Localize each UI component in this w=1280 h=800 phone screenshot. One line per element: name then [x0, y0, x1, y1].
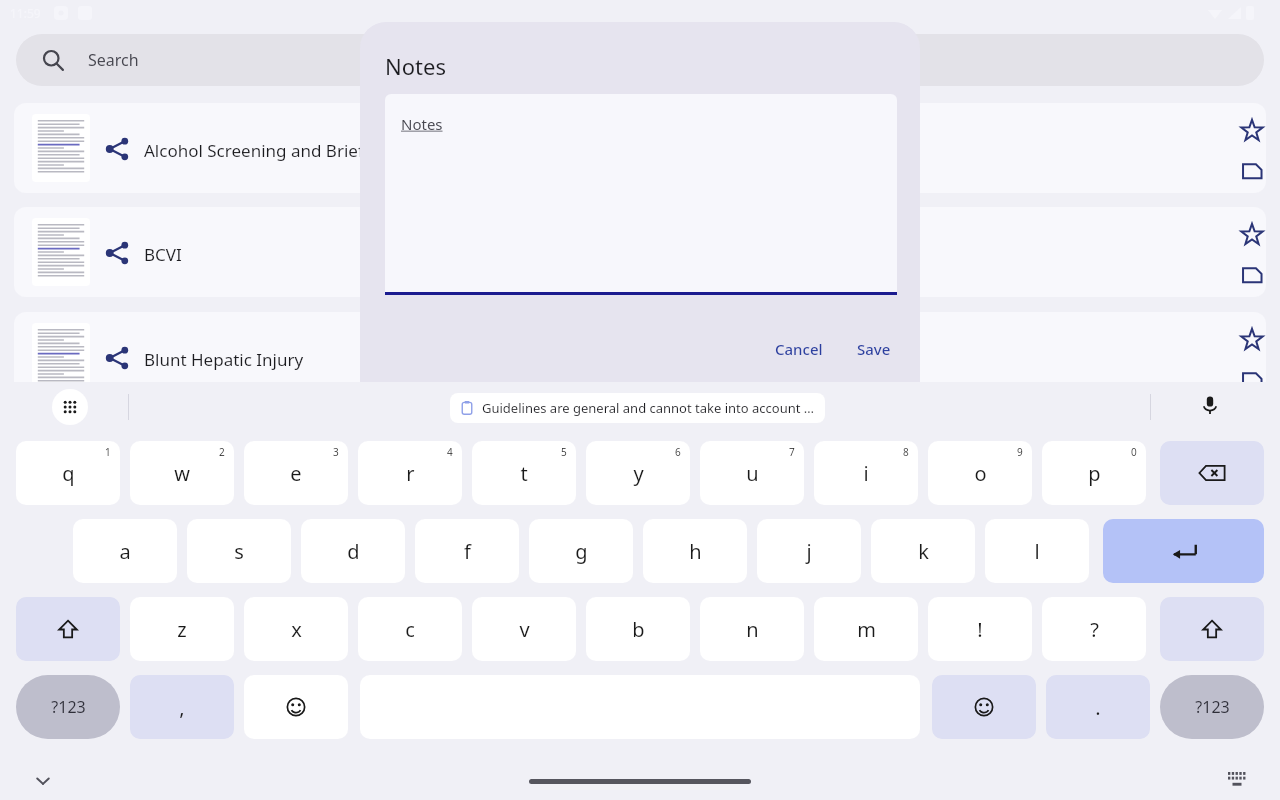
button[interactable]: Notes [385, 94, 897, 294]
button[interactable]: Backspace [1160, 441, 1264, 505]
staticText: x [291, 616, 302, 643]
button[interactable]: b [586, 597, 690, 661]
button[interactable]: More options [52, 389, 88, 425]
button[interactable]: x [244, 597, 348, 661]
staticText: 7 [789, 445, 795, 459]
staticText: ?123 [51, 696, 86, 718]
button[interactable]: i [814, 441, 918, 505]
button[interactable]: Hide keyboard [28, 766, 58, 796]
button[interactable]: Shift [1160, 597, 1264, 661]
button[interactable]: Emoji [932, 675, 1036, 739]
button[interactable]: c [358, 597, 462, 661]
button[interactable]: d [301, 519, 405, 583]
staticText: z [177, 616, 187, 643]
button[interactable]: Guidelines are general and cannot take i… [450, 393, 825, 423]
button[interactable]: m [814, 597, 918, 661]
staticText: k [918, 538, 929, 565]
button[interactable]: ?123 [1160, 675, 1264, 739]
button[interactable]: . [1046, 675, 1150, 739]
button[interactable]: Share [14, 312, 1266, 402]
button[interactable]: u [700, 441, 804, 505]
button[interactable]: Notes [1238, 366, 1266, 394]
button[interactable]: Share [104, 240, 130, 266]
staticText: 6 [675, 445, 681, 459]
staticText: m [857, 616, 876, 643]
button[interactable]: l [985, 519, 1089, 583]
button[interactable]: Favourite [1238, 221, 1266, 249]
staticText: a [119, 538, 131, 565]
staticText: Save [857, 339, 891, 359]
staticText: 2 [219, 445, 225, 459]
staticText: h [689, 538, 702, 565]
button[interactable]: k [871, 519, 975, 583]
button[interactable]: Share [14, 103, 1266, 193]
button[interactable]: p [1042, 441, 1146, 505]
staticText: f [464, 538, 471, 565]
button[interactable]: Favourite [1238, 326, 1266, 354]
button[interactable]: j [757, 519, 861, 583]
staticText: g [575, 538, 588, 565]
button[interactable]: Share [14, 207, 1266, 297]
button[interactable]: s [187, 519, 291, 583]
button[interactable]: t [472, 441, 576, 505]
staticText: s [234, 538, 244, 565]
button[interactable]: w [130, 441, 234, 505]
staticText: Blunt Hepatic Injury [144, 348, 1144, 371]
button[interactable]: r [358, 441, 462, 505]
button[interactable]: Enter [1103, 519, 1264, 583]
button[interactable]: h [643, 519, 747, 583]
button[interactable]: z [130, 597, 234, 661]
staticText: l [1034, 538, 1040, 565]
staticText: 8 [903, 445, 909, 459]
staticText: v [519, 616, 530, 643]
button[interactable]: Save [845, 329, 903, 369]
button[interactable]: Shift [16, 597, 120, 661]
staticText: 9 [1017, 445, 1023, 459]
button[interactable]: Switch keyboard [1222, 766, 1252, 796]
button[interactable]: y [586, 441, 690, 505]
staticText: n [746, 616, 759, 643]
button[interactable]: Search [16, 34, 1264, 86]
staticText: b [632, 616, 645, 643]
staticText: 3 [333, 445, 339, 459]
button[interactable]: v [472, 597, 576, 661]
button[interactable]: o [928, 441, 1032, 505]
button[interactable]: Share [104, 345, 130, 371]
button[interactable]: g [529, 519, 633, 583]
button[interactable]: a [73, 519, 177, 583]
staticText: BCVI [144, 243, 1144, 266]
button[interactable]: Favourite [1238, 117, 1266, 145]
button[interactable]: Voice input [1194, 389, 1226, 421]
button[interactable]: Emoji [244, 675, 348, 739]
button[interactable]: Cancel [763, 329, 835, 369]
staticText: ?123 [1195, 696, 1230, 718]
staticText: r [406, 460, 415, 487]
staticText: d [347, 538, 360, 565]
staticText: 4 [447, 445, 453, 459]
staticText: 5 [561, 445, 567, 459]
button[interactable]: n [700, 597, 804, 661]
staticText: ? [1090, 616, 1099, 643]
button[interactable]: Share [104, 136, 130, 162]
button[interactable]: q [16, 441, 120, 505]
button[interactable]: Notes [1238, 157, 1266, 185]
staticText: u [746, 460, 759, 487]
button[interactable]: e [244, 441, 348, 505]
staticText: Alcohol Screening and Brief Intervention [144, 139, 1144, 162]
button[interactable]: , [130, 675, 234, 739]
button[interactable]: ! [928, 597, 1032, 661]
staticText: , [179, 694, 185, 721]
button[interactable]: f [415, 519, 519, 583]
staticText: y [633, 460, 644, 487]
staticText: Cancel [775, 339, 823, 359]
button[interactable]: ? [1042, 597, 1146, 661]
button[interactable]: Notes [1238, 261, 1266, 289]
staticText: . [1095, 694, 1101, 721]
staticText: j [806, 538, 812, 565]
staticText: q [62, 460, 75, 487]
button[interactable]: ?123 [16, 675, 120, 739]
staticText: Guidelines are general and cannot take i… [482, 399, 815, 417]
staticText: w [174, 460, 190, 487]
